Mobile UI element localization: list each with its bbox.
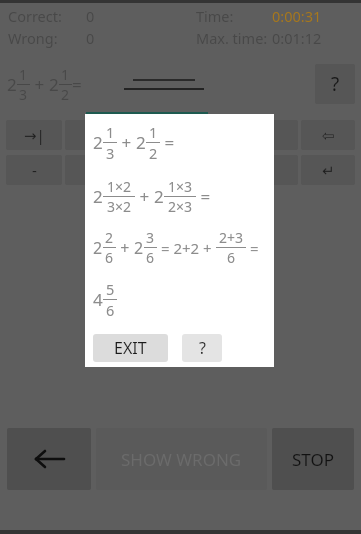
button[interactable]: ↵ [301,155,355,185]
staticText: 1 [149,122,158,142]
staticText: 4 [93,288,103,311]
staticText: ? [331,71,340,97]
staticText: 2 [134,237,144,259]
button[interactable]: 1 [183,155,239,185]
staticText: ? [199,337,206,359]
staticText: EXIT [114,337,147,359]
button[interactable]: 5 [242,120,298,150]
staticText: Wrong: [8,28,58,48]
staticText: 3×2 [107,197,132,216]
staticText: 7 [89,125,98,145]
staticText: = [160,131,175,154]
staticText: 0:00:31 [272,6,322,26]
staticText: 1×3 [168,177,193,196]
staticText: 2 [7,73,17,96]
staticText: 2×3 [168,197,193,216]
staticText: 5 [106,279,115,299]
button[interactable]: EXIT [93,334,168,362]
staticText: 0 [86,6,95,26]
staticText: 0:01:12 [272,28,322,48]
staticText: = [196,185,211,208]
staticText: 2 [93,237,103,259]
staticText: 6 [105,248,114,267]
staticText: 6 [146,248,155,267]
staticText: + [116,237,134,259]
button[interactable]: Help [315,64,355,104]
staticText: 1 [61,65,70,84]
staticText: 1 [19,65,28,84]
button[interactable]: 8 [124,120,180,150]
staticText: 3 [19,85,28,104]
staticText: →| [24,125,45,145]
staticText: 2 [105,228,114,247]
staticText: 0 [266,160,275,180]
staticText: = [72,73,82,96]
staticText: 8 [148,125,157,145]
button[interactable]: 6 [65,155,121,185]
staticText: 2 [93,185,103,208]
button[interactable]: Help [182,334,222,362]
staticText: + [117,131,136,154]
staticText: Max. time: [196,28,272,48]
button[interactable]: 7 [65,120,121,150]
staticText: 2 [61,85,70,104]
staticText: 2 [49,73,59,96]
button[interactable]: Back [7,428,91,490]
button[interactable]: STOP [272,428,354,490]
button[interactable]: 0 [242,155,298,185]
button[interactable]: →| [6,120,62,150]
button[interactable]: 4 [124,155,180,185]
staticText: 6 [227,248,236,267]
staticText: 1×2 [107,177,132,196]
staticText: 3 [146,228,155,247]
staticText: ⇦ [322,127,335,144]
staticText: ↵ [322,162,335,179]
staticText: 2 [136,131,146,154]
staticText: Correct: [8,6,62,26]
staticText: 1 [106,122,115,142]
button[interactable]: ⇦ [301,120,355,150]
staticText: 2+3 [219,228,244,247]
staticText: + [135,185,154,208]
staticText: = 2+2 + [157,238,216,258]
staticText: 3 [106,143,115,163]
staticText: SHOW WRONG [121,448,242,471]
staticText: - [32,160,37,180]
staticText: 2 [93,131,103,154]
staticText: 5 [266,125,275,145]
staticText: + [30,73,49,96]
staticText: 2 [149,143,158,163]
staticText: 2 [154,185,164,208]
staticText: STOP [292,448,335,471]
staticText: = [246,238,259,258]
staticText: 0 [86,28,95,48]
staticText: 6 [106,300,115,320]
staticText: Time: [196,6,272,26]
